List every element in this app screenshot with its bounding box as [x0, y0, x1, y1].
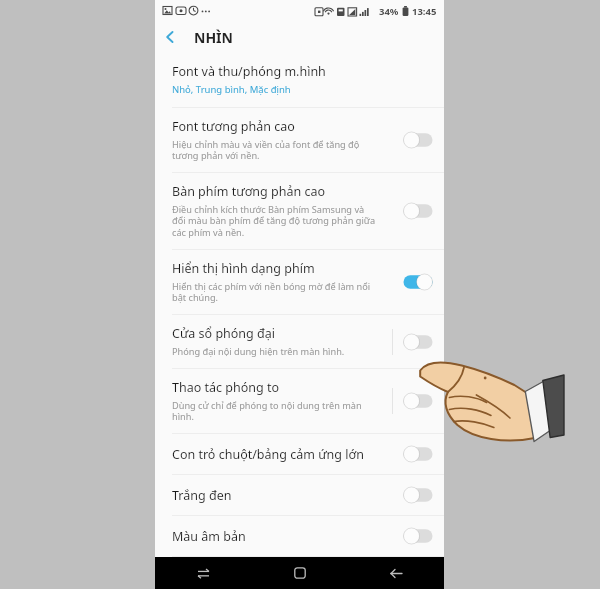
button[interactable]: Trắng đen — [155, 475, 444, 515]
staticText: NHÌN — [194, 28, 233, 47]
staticText: Dùng cử chỉ để phóng to nội dung trên mà… — [172, 399, 362, 423]
staticText: Trắng đen — [172, 487, 232, 504]
staticText: 34% — [379, 5, 399, 18]
staticText: Hiển thị hình dạng phím — [172, 260, 315, 277]
button[interactable]: Màu âm bản — [155, 516, 444, 556]
button[interactable]: Off — [402, 201, 434, 221]
button[interactable]: Off — [402, 332, 434, 352]
button[interactable]: Off — [402, 391, 434, 411]
staticText: Hiệu chỉnh màu và viền của font để tăng … — [172, 138, 360, 162]
staticText: Font tương phản cao — [172, 118, 295, 135]
staticText: Bàn phím tương phản cao — [172, 183, 325, 200]
button[interactable]: On — [402, 272, 434, 292]
staticText: Màu âm bản — [172, 528, 246, 545]
button[interactable]: Off — [402, 485, 434, 505]
button[interactable]: Recents — [155, 557, 252, 589]
staticText: Hiển thị các phím với nền bóng mờ để làm… — [172, 280, 371, 304]
button[interactable]: Back — [348, 557, 444, 589]
staticText: Nhỏ, Trung bình, Mặc định — [172, 83, 291, 96]
button[interactable]: Font tương phản cao — [155, 108, 444, 172]
button[interactable]: Hiển thị hình dạng phím — [155, 250, 444, 314]
button[interactable]: Home — [252, 557, 348, 589]
staticText: Phóng đại nội dung hiện trên màn hình. — [172, 345, 345, 358]
button[interactable]: Bàn phím tương phản cao — [155, 173, 444, 249]
staticText: 13:45 — [412, 5, 437, 18]
button[interactable]: Con trỏ chuột/bảng cảm ứng lớn — [155, 434, 444, 474]
button[interactable]: Off — [402, 444, 434, 464]
staticText: Font và thu/phóng m.hình — [172, 63, 326, 80]
button[interactable]: Off — [402, 130, 434, 150]
button[interactable]: Cửa sổ phóng đại — [155, 315, 444, 368]
button[interactable]: Off — [402, 526, 434, 546]
button[interactable]: Font và thu/phóng m.hình — [155, 52, 444, 107]
staticText: Con trỏ chuột/bảng cảm ứng lớn — [172, 446, 364, 463]
button[interactable]: Thao tác phóng to — [155, 369, 444, 433]
button[interactable]: Back — [155, 22, 185, 52]
staticText: Thao tác phóng to — [172, 379, 279, 396]
staticText: Điều chỉnh kích thước Bàn phím Samsung v… — [172, 203, 376, 239]
staticText: Cửa sổ phóng đại — [172, 325, 275, 342]
